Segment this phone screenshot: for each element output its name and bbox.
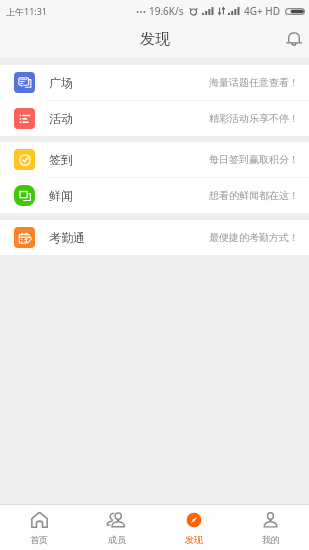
button[interactable]: 签到: [0, 142, 309, 177]
button[interactable]: 广场: [0, 65, 309, 100]
staticText: 每日签到赢取积分！: [209, 153, 299, 166]
button[interactable]: 鲜闻: [0, 178, 309, 213]
staticText: 我的: [262, 534, 280, 545]
staticText: 签到: [49, 152, 73, 167]
button[interactable]: 考勤通: [0, 220, 309, 255]
staticText: 考勤通: [49, 230, 85, 245]
staticText: 19.6K/s: [149, 4, 184, 18]
staticText: 精彩活动乐享不停！: [209, 112, 299, 125]
staticText: 发现: [185, 534, 203, 545]
button[interactable]: 成员: [78, 511, 155, 545]
staticText: 上午11:31: [6, 5, 48, 17]
staticText: 海量话题任意查看！: [209, 76, 299, 89]
button[interactable]: 活动: [0, 101, 309, 136]
button[interactable]: Notifications: [280, 24, 308, 52]
staticText: 发现: [140, 30, 170, 49]
staticText: 鲜闻: [49, 188, 73, 203]
staticText: 想看的鲜闻都在这！: [209, 189, 299, 202]
button[interactable]: 发现: [155, 511, 232, 545]
staticText: 最便捷的考勤方式！: [209, 231, 299, 244]
staticText: 成员: [108, 534, 126, 545]
staticText: 活动: [49, 111, 73, 126]
staticText: 4G+ HD: [244, 4, 281, 18]
staticText: 广场: [49, 75, 73, 90]
button[interactable]: 首页: [0, 511, 78, 545]
button[interactable]: 我的: [232, 511, 309, 545]
staticText: 首页: [30, 534, 48, 545]
